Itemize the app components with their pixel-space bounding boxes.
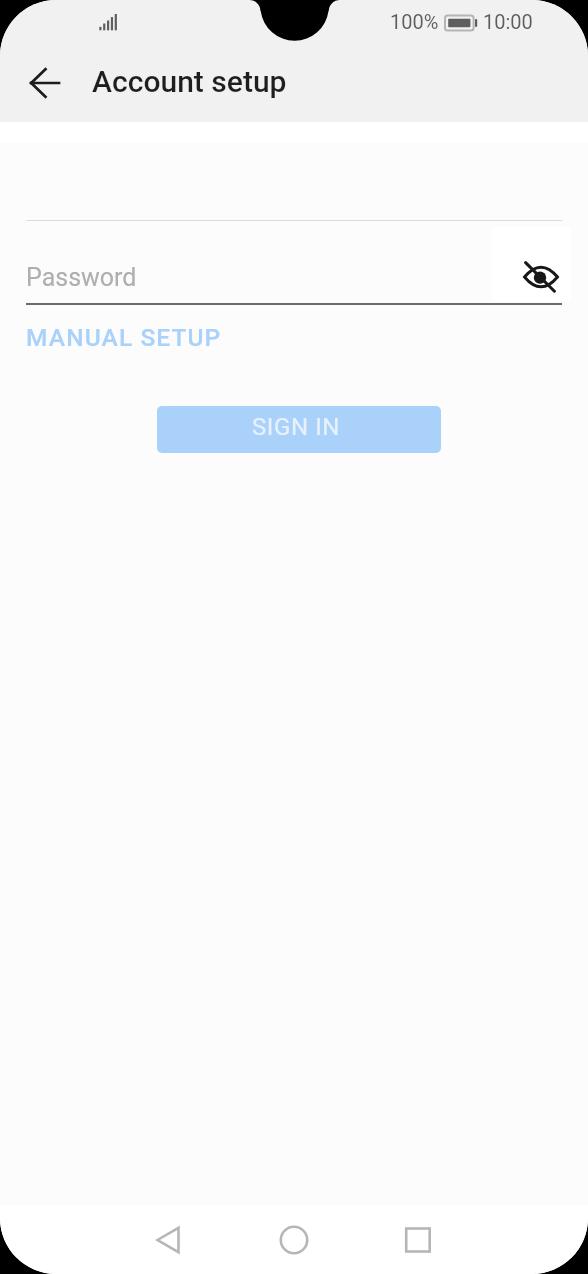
staticText: Account setup <box>92 64 287 99</box>
button[interactable]: Recent apps <box>378 1205 458 1274</box>
button[interactable]: SIGN IN <box>157 406 441 453</box>
button[interactable]: Back <box>128 1205 208 1274</box>
staticText: MANUAL SETUP <box>26 323 222 352</box>
staticText: 100% <box>390 10 439 33</box>
staticText: Password <box>26 263 137 292</box>
button[interactable]: Back <box>14 52 76 114</box>
button[interactable]: Home <box>254 1205 334 1274</box>
button[interactable]: Show password <box>492 227 571 301</box>
staticText: SIGN IN <box>252 413 341 441</box>
button[interactable]: MANUAL SETUP <box>26 315 222 360</box>
staticText: 10:00 <box>483 10 533 33</box>
